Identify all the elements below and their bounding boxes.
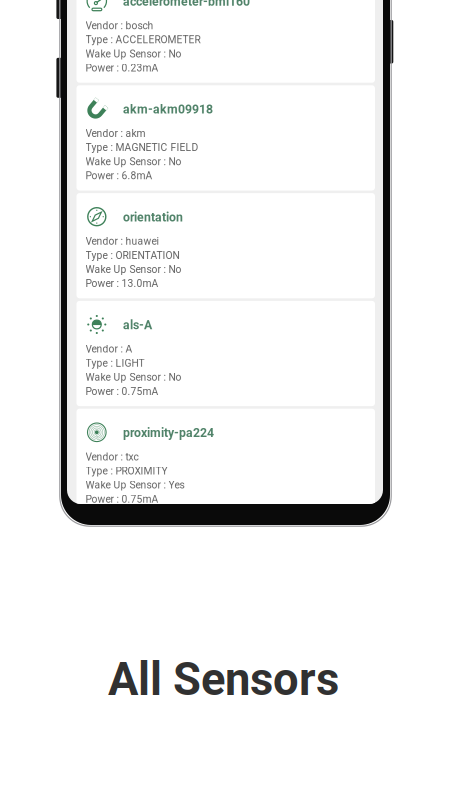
button[interactable]: proximity-pa224 [76,409,375,514]
staticText: Type : ORIENTATION [85,249,179,261]
button[interactable]: accelerometer-bmi160 [76,0,375,83]
staticText: accelerometer-bmi160 [123,0,250,9]
staticText: Wake Up Sensor : No [85,48,181,60]
staticText: Type : PROXIMITY [85,465,167,477]
staticText: Vendor : txc [85,451,138,463]
staticText: All Sensors [108,653,339,706]
staticText: Type : ACCELEROMETER [85,34,200,46]
button[interactable]: akm-akm09918 [76,85,375,190]
button[interactable]: orientation [76,193,375,298]
staticText: Type : LIGHT [85,357,144,369]
staticText: Vendor : bosch [85,20,153,32]
staticText: Type : MAGNETIC FIELD [85,142,198,154]
staticText: als-A [123,318,152,332]
staticText: Wake Up Sensor : No [85,156,181,168]
staticText: Power : 13.0mA [85,278,158,290]
staticText: Wake Up Sensor : No [85,263,181,275]
staticText: Vendor : akm [85,127,145,139]
staticText: Wake Up Sensor : No [85,371,181,383]
staticText: Vendor : A [85,343,132,355]
staticText: Power : 0.75mA [85,493,158,505]
staticText: Wake Up Sensor : Yes [85,479,184,491]
staticText: Power : 0.75mA [85,385,158,397]
staticText: Power : 6.8mA [85,170,152,182]
staticText: akm-akm09918 [123,102,213,117]
staticText: Vendor : huawei [85,235,158,247]
staticText: proximity-pa224 [123,426,214,440]
button[interactable]: als-A [76,301,375,406]
staticText: orientation [123,210,183,224]
staticText: Power : 0.23mA [85,62,158,74]
